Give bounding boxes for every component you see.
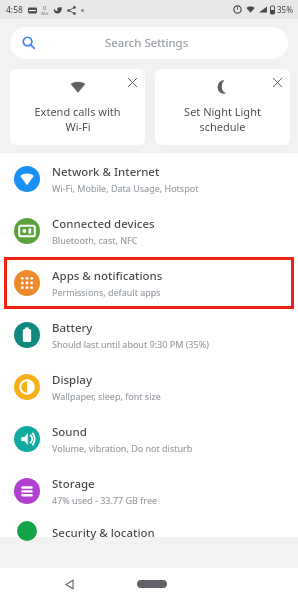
button[interactable]: Dismiss <box>128 78 137 87</box>
staticText: 4:58 <box>6 4 23 16</box>
staticText: Set Night Light <box>184 104 261 119</box>
button[interactable]: Storage <box>0 465 298 517</box>
staticText: 35% <box>277 4 293 15</box>
staticText: Permissions, default apps <box>52 286 161 298</box>
button[interactable]: Dismiss <box>155 69 290 145</box>
staticText: schedule <box>199 119 246 134</box>
staticText: Security & location <box>52 525 155 541</box>
staticText: Bluetooth, cast, NFC <box>52 234 138 246</box>
button[interactable]: Dismiss <box>273 78 282 87</box>
staticText: Sound <box>52 424 87 440</box>
other: Search <box>22 36 36 50</box>
button[interactable]: Display <box>0 361 298 413</box>
staticText: Extend calls with <box>34 104 121 119</box>
staticText: KB/s <box>41 11 49 16</box>
staticText: Volume, vibration, Do not disturb <box>52 442 193 454</box>
staticText: Wi-Fi <box>65 119 91 134</box>
staticText: Network & Internet <box>52 164 160 180</box>
button[interactable]: Search <box>10 27 288 59</box>
staticText: Should last until about 9:30 PM (35%) <box>52 338 209 350</box>
button[interactable]: Network & Internet <box>0 153 298 205</box>
staticText: 47% used - 33.77 GB free <box>52 494 158 506</box>
staticText: 0 <box>43 4 47 11</box>
button[interactable]: Sound <box>0 413 298 465</box>
staticText: Apps & notifications <box>52 268 163 284</box>
button[interactable]: Back <box>58 573 80 595</box>
staticText: Wallpaper, sleep, font size <box>52 390 161 402</box>
staticText: Display <box>52 372 92 388</box>
button[interactable]: Apps & notifications <box>4 257 294 309</box>
staticText: Storage <box>52 476 95 492</box>
staticText: Connected devices <box>52 216 155 232</box>
button[interactable]: Connected devices <box>0 205 298 257</box>
button[interactable]: Battery <box>0 309 298 361</box>
button[interactable]: Dismiss <box>10 69 145 145</box>
staticText: Battery <box>52 320 93 336</box>
staticText: Wi-Fi, Mobile, Data Usage, Hotspot <box>52 182 199 194</box>
staticText: Search Settings <box>105 35 189 51</box>
button[interactable]: Security & location <box>0 517 298 537</box>
button[interactable]: Home <box>135 577 169 591</box>
